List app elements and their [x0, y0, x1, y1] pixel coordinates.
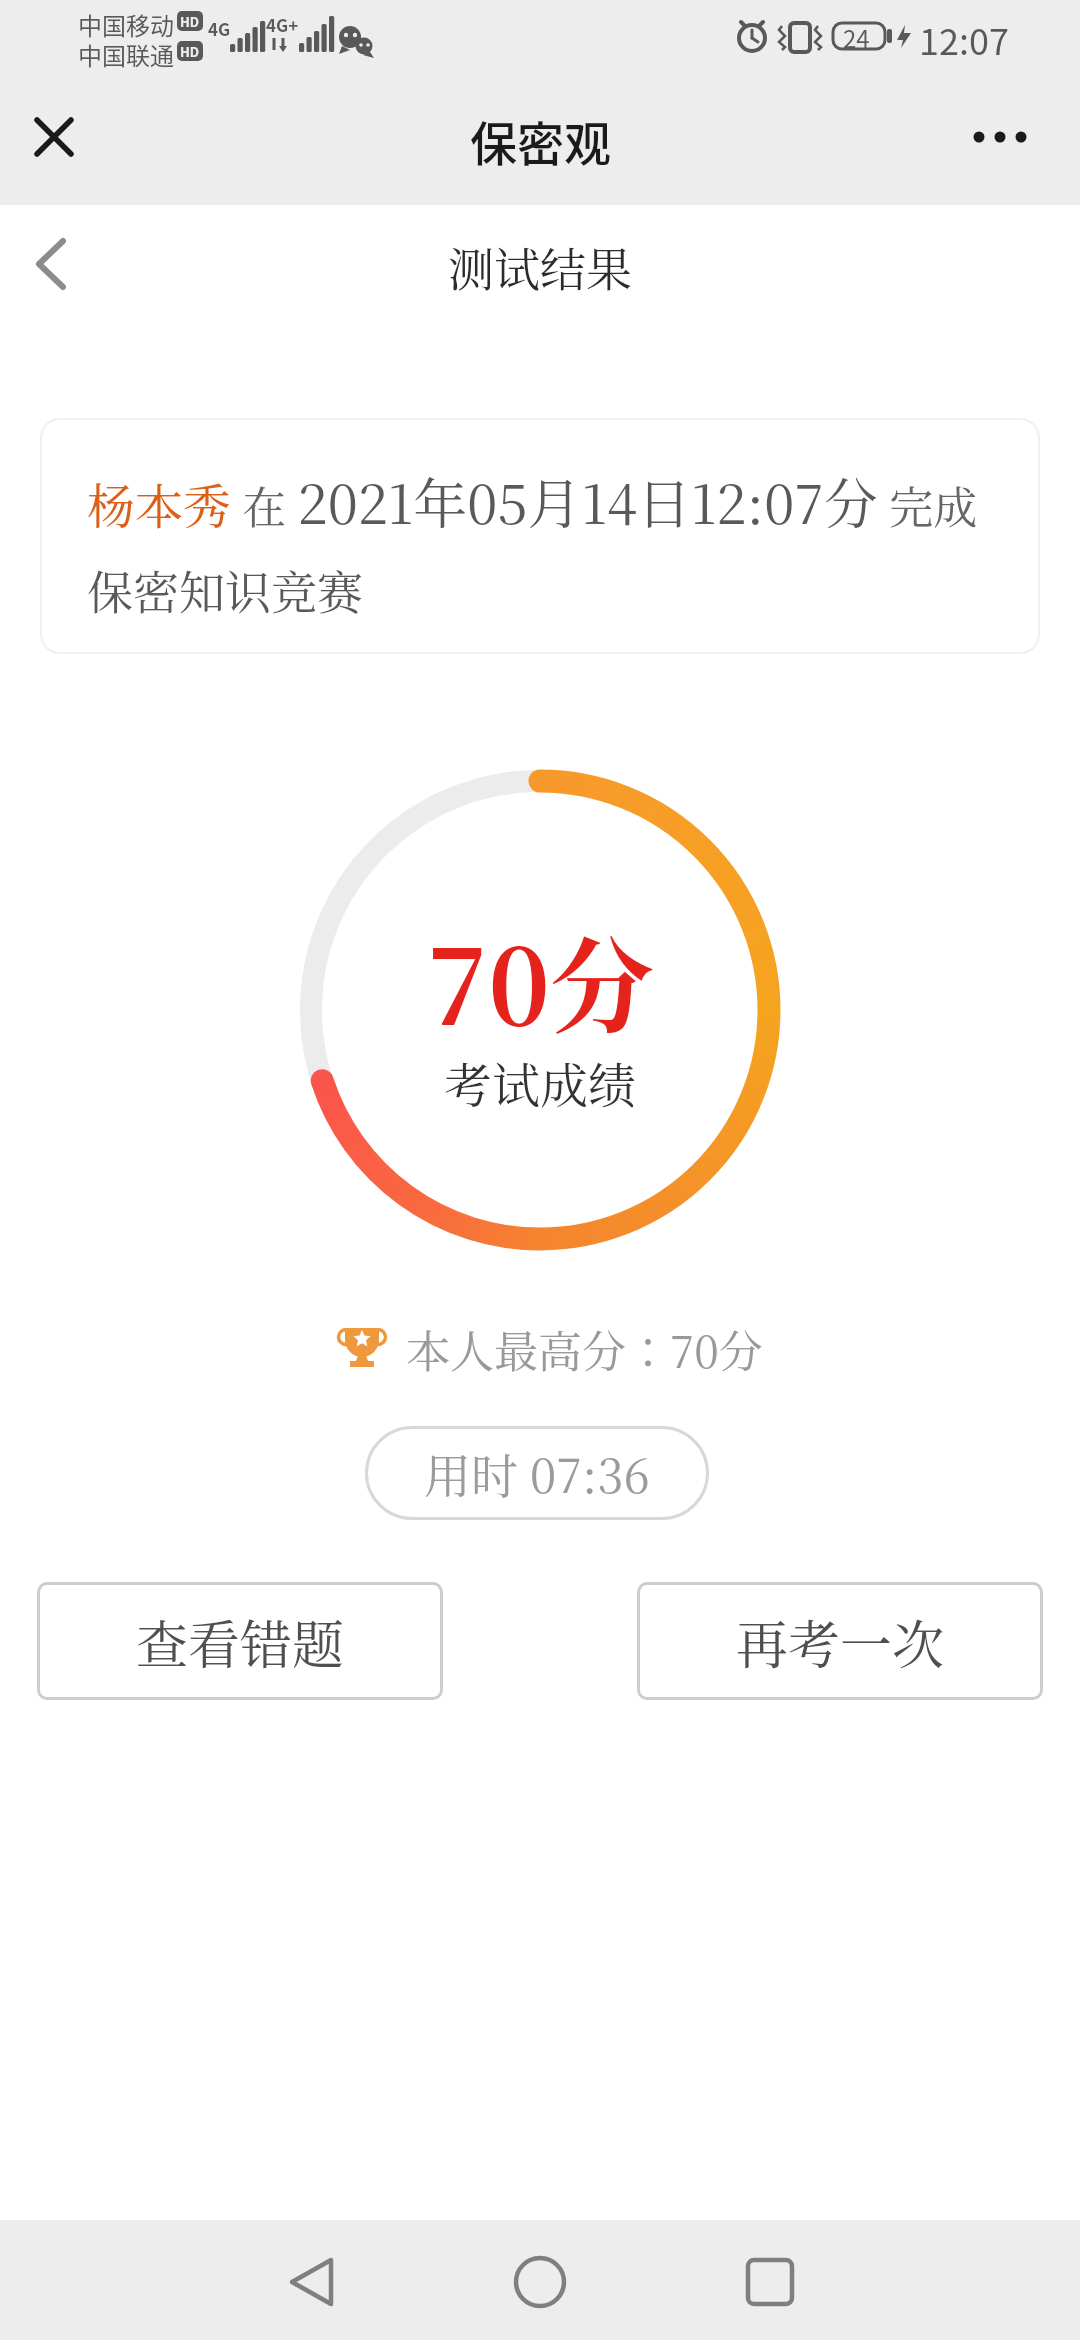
button[interactable]	[505, 2250, 575, 2314]
staticText: 用时 07:36	[424, 1439, 650, 1507]
staticText: 保密观	[470, 106, 611, 174]
staticText: 中国移动	[78, 7, 174, 42]
staticText: 4G+	[266, 12, 299, 37]
button[interactable]: 用时 07:36	[365, 1426, 709, 1520]
staticText: 70分	[427, 905, 654, 1054]
staticText: 再考一次	[736, 1604, 945, 1679]
staticText: 测试结果	[448, 233, 632, 299]
button[interactable]: 杨本秀 在 2021年05月14日12:07分 完成	[40, 418, 1040, 654]
staticText: HD	[180, 12, 200, 31]
staticText: 杨本秀 在 2021年05月14日12:07分 完成	[87, 462, 978, 540]
staticText: 查看错题	[136, 1604, 345, 1679]
button[interactable]: 查看错题	[37, 1582, 443, 1700]
button[interactable]: 再考一次	[637, 1582, 1043, 1700]
staticText: 考试成绩	[444, 1048, 637, 1117]
staticText: 本人最高分：70分	[406, 1317, 763, 1380]
staticText: HD	[180, 42, 200, 61]
staticText: 保密知识竞赛	[87, 556, 363, 622]
staticText: 12:07	[919, 13, 1009, 65]
button[interactable]	[275, 2250, 345, 2314]
staticText: 4G	[208, 16, 231, 41]
button[interactable]	[735, 2250, 805, 2314]
staticText: 中国联通	[78, 37, 174, 72]
button[interactable]	[965, 107, 1035, 167]
button[interactable]	[20, 234, 80, 294]
button[interactable]	[24, 107, 84, 167]
staticText: 24	[843, 20, 870, 55]
